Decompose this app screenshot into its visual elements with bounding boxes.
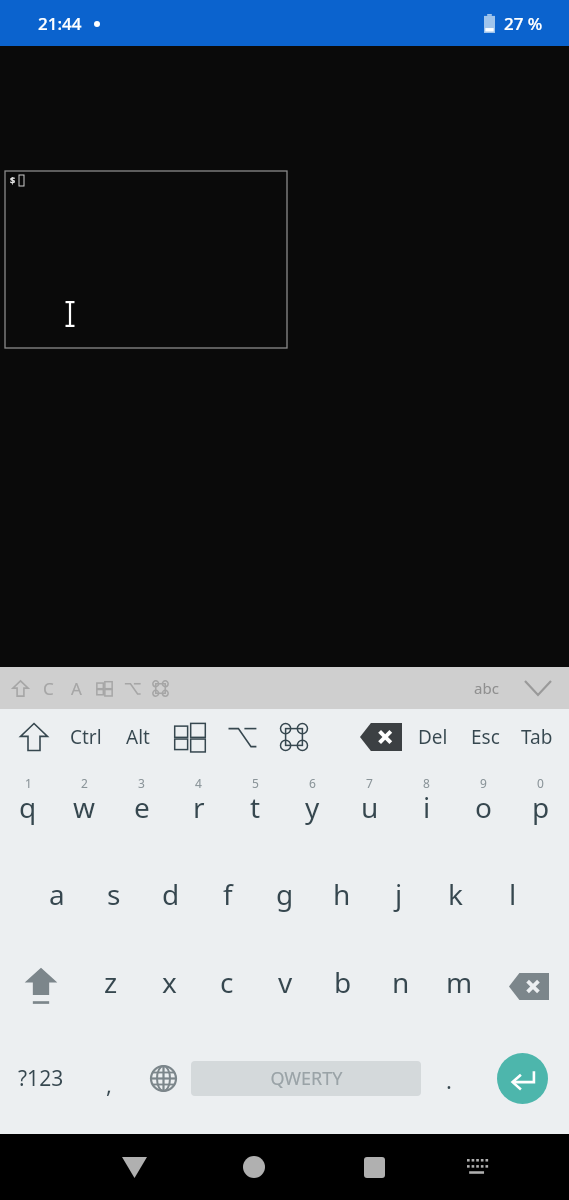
staticText: 5 [252, 775, 259, 791]
staticText: 4 [195, 775, 202, 791]
staticText: abc [474, 678, 499, 698]
button[interactable]: A [62, 669, 90, 707]
staticText: 3 [138, 775, 145, 791]
staticText: v [278, 963, 293, 1001]
button[interactable]: x [140, 942, 198, 1030]
button[interactable]: Windows key [164, 713, 216, 761]
button[interactable]: Back [74, 1134, 194, 1200]
button[interactable]: . [421, 1030, 476, 1126]
button[interactable]: s [85, 854, 142, 942]
staticText: 9 [480, 775, 487, 791]
button[interactable]: 8 [398, 766, 455, 854]
button[interactable]: Ctrl [60, 713, 112, 761]
button[interactable]: Tab [511, 713, 563, 761]
staticText: d [162, 875, 180, 913]
button[interactable]: c [198, 942, 256, 1030]
button[interactable]: 2 [56, 766, 113, 854]
staticText: e [134, 788, 150, 826]
staticText: 2 [81, 775, 88, 791]
staticText: x [162, 963, 177, 1001]
staticText: Alt [126, 724, 150, 750]
staticText: Ctrl [70, 724, 102, 750]
button[interactable]: 5 [227, 766, 284, 854]
button[interactable]: 7 [341, 766, 398, 854]
button[interactable]: 6 [284, 766, 341, 854]
button[interactable]: Command [268, 713, 320, 761]
staticText: a [49, 875, 65, 913]
button[interactable]: Option [118, 669, 146, 707]
button[interactable]: j [370, 854, 427, 942]
staticText: k [448, 875, 463, 913]
staticText: 27 % [504, 12, 543, 35]
button[interactable]: Del [407, 713, 459, 761]
staticText: y [305, 788, 320, 826]
button[interactable]: Recent apps [314, 1134, 434, 1200]
button[interactable]: C [34, 669, 62, 707]
staticText: c [220, 963, 234, 1001]
button[interactable]: 0 [512, 766, 569, 854]
staticText: 8 [423, 775, 430, 791]
button[interactable]: d [142, 854, 199, 942]
staticText: 6 [309, 775, 316, 791]
button[interactable]: 3 [113, 766, 170, 854]
staticText: 0 [537, 775, 544, 791]
staticText: h [333, 875, 351, 913]
staticText: j [395, 875, 403, 913]
button[interactable]: ?123 [0, 1030, 81, 1126]
staticText: l [509, 875, 517, 913]
staticText: 1 [25, 775, 32, 791]
staticText: s [107, 875, 121, 913]
button[interactable]: 9 [455, 766, 512, 854]
staticText: ?123 [18, 1064, 64, 1093]
button[interactable]: Shift [6, 669, 34, 707]
button[interactable]: a [28, 854, 85, 942]
staticText: b [334, 963, 352, 1001]
staticText: QWERTY [270, 1066, 343, 1091]
button[interactable]: n [372, 942, 430, 1030]
staticText: $ [10, 174, 16, 186]
button[interactable]: k [427, 854, 484, 942]
button[interactable]: Shift [8, 713, 60, 761]
staticText: Tab [521, 724, 553, 750]
button[interactable]: Option [216, 713, 268, 761]
button[interactable]: 4 [170, 766, 227, 854]
button[interactable]: h [313, 854, 370, 942]
button[interactable]: l [484, 854, 541, 942]
button[interactable]: z [82, 942, 140, 1030]
staticText: . [446, 1065, 452, 1095]
button[interactable]: Windows [90, 669, 118, 707]
button[interactable]: abc [470, 678, 503, 698]
button[interactable]: Esc [459, 713, 511, 761]
button[interactable]: g [256, 854, 313, 942]
button[interactable]: Backspace [355, 713, 407, 761]
button[interactable]: Switch keyboard [434, 1134, 524, 1200]
staticText: Esc [471, 724, 500, 750]
staticText: A [71, 677, 82, 700]
staticText: t [250, 788, 261, 826]
button[interactable]: Command [146, 669, 174, 707]
button[interactable]: 1 [0, 766, 56, 854]
button[interactable]: m [430, 942, 488, 1030]
button[interactable]: f [199, 854, 256, 942]
staticText: , [106, 1069, 112, 1099]
button[interactable]: Hide keyboard [521, 671, 555, 705]
button[interactable]: v [256, 942, 314, 1030]
button[interactable]: Home [194, 1134, 314, 1200]
button[interactable]: Delete [488, 942, 569, 1030]
button[interactable]: QWERTY [191, 1061, 421, 1096]
staticText: o [475, 788, 492, 826]
button[interactable]: Change language [136, 1030, 191, 1126]
staticText: Del [418, 724, 448, 750]
staticText: q [19, 788, 37, 826]
button[interactable]: b [314, 942, 372, 1030]
button[interactable]: , [81, 1030, 136, 1126]
button[interactable]: Shift [0, 942, 82, 1030]
button[interactable]: Enter [476, 1030, 569, 1126]
staticText: f [223, 875, 233, 913]
staticText: r [193, 788, 205, 826]
button[interactable]: Alt [112, 713, 164, 761]
staticText: z [104, 963, 118, 1001]
staticText: i [423, 788, 431, 826]
staticText: n [392, 963, 410, 1001]
staticText: p [532, 788, 550, 826]
